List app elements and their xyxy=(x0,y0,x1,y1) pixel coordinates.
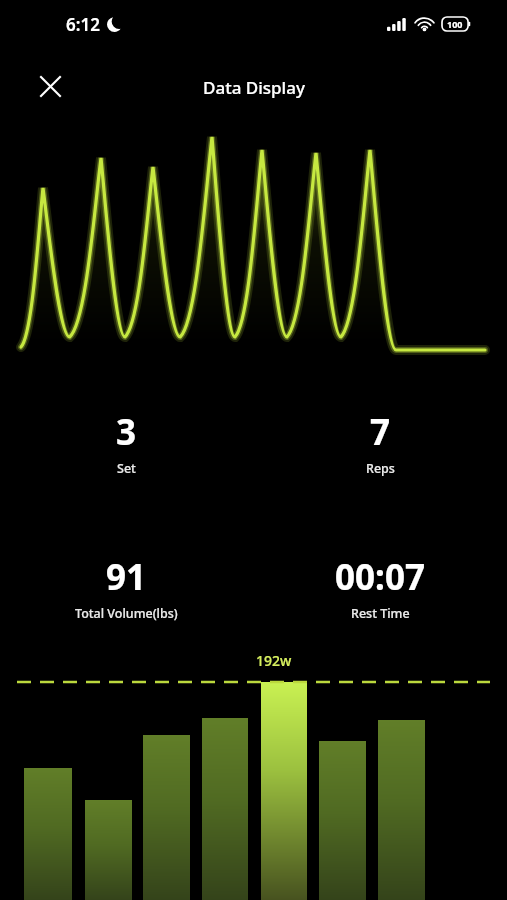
staticText: 00:07 xyxy=(335,553,425,601)
staticText: Rest Time xyxy=(351,605,410,622)
staticText: 100 xyxy=(447,18,463,30)
staticText: Reps xyxy=(366,460,395,477)
button[interactable]: Close xyxy=(30,66,70,106)
staticText: Data Display xyxy=(203,76,305,99)
staticText: Total Volume(lbs) xyxy=(75,605,178,622)
staticText: 3 xyxy=(116,408,137,456)
staticText: Set xyxy=(117,460,136,477)
staticText: 91 xyxy=(106,553,147,601)
staticText: 6:12 xyxy=(66,13,100,36)
staticText: 192w xyxy=(256,651,292,670)
staticText: 7 xyxy=(370,408,391,456)
